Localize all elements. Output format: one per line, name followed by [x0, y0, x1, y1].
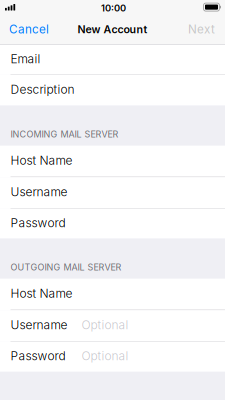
button[interactable]: Username	[0, 310, 225, 342]
staticText: Username	[10, 185, 67, 199]
staticText: INCOMING MAIL SERVER	[10, 129, 118, 140]
button[interactable]: Host Name	[0, 279, 225, 310]
button[interactable]: Cancel	[0, 14, 60, 44]
staticText: Host Name	[10, 153, 72, 168]
button[interactable]: Email	[0, 45, 225, 75]
staticText: Host Name	[10, 286, 72, 301]
staticText: Optional	[81, 349, 128, 363]
staticText: Email	[10, 52, 40, 66]
staticText: OUTGOING MAIL SERVER	[10, 262, 121, 273]
staticText: New Account	[77, 23, 147, 36]
button[interactable]: Password	[0, 209, 225, 239]
button[interactable]: Description	[0, 75, 225, 106]
button[interactable]: Host Name	[0, 146, 225, 177]
button[interactable]: Password	[0, 342, 225, 372]
button[interactable]: Username	[0, 177, 225, 209]
staticText: Optional	[81, 318, 128, 332]
staticText: Password	[10, 349, 65, 363]
staticText: 10:00	[101, 2, 126, 14]
staticText: Next	[188, 22, 215, 36]
button[interactable]: Next	[177, 14, 225, 44]
staticText: Username	[10, 318, 67, 332]
staticText: Cancel	[9, 22, 49, 36]
staticText: Password	[10, 216, 65, 230]
staticText: Description	[10, 82, 74, 97]
